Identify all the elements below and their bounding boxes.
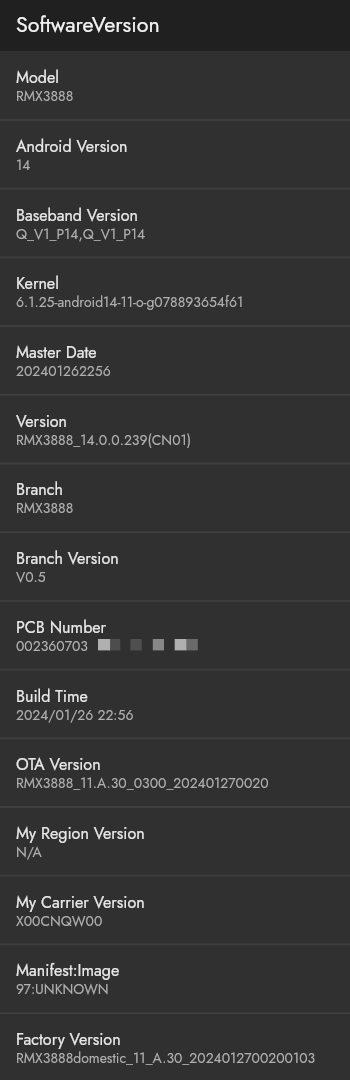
staticText: Model [16, 66, 59, 89]
staticText: RMX3888_11.A.30_0300_202401270020 [16, 773, 269, 793]
button[interactable]: Manifest:Image [0, 944, 350, 1013]
button[interactable]: Build Time [0, 670, 350, 739]
button[interactable]: SoftwareVersion [0, 0, 350, 51]
staticText: My Carrier Version [16, 891, 145, 914]
staticText: N/A [16, 842, 42, 862]
staticText: Android Version [16, 135, 128, 158]
staticText: Factory Version [16, 1028, 121, 1051]
button[interactable]: OTA Version [0, 738, 350, 807]
staticText: Baseband Version [16, 204, 138, 227]
button[interactable]: My Region Version [0, 807, 350, 876]
button[interactable]: My Carrier Version [0, 876, 350, 945]
button[interactable]: Kernel [0, 257, 350, 326]
button[interactable]: Master Date [0, 326, 350, 395]
staticText: Q_V1_P14,Q_V1_P14 [16, 224, 146, 244]
button[interactable]: PCB Number [0, 601, 350, 670]
staticText: Manifest:Image [16, 959, 120, 982]
staticText: 6.1.25-android14-11-o-g078893654f61 [16, 292, 244, 312]
button[interactable]: Branch Version [0, 532, 350, 601]
staticText: 97:UNKNOWN [16, 979, 109, 999]
staticText: My Region Version [16, 822, 145, 845]
staticText: Kernel [16, 272, 59, 295]
staticText: RMX3888 [16, 498, 74, 518]
staticText: RMX3888 [16, 86, 74, 106]
button[interactable]: Factory Version [0, 1013, 350, 1080]
button[interactable]: Baseband Version [0, 189, 350, 258]
staticText: SoftwareVersion [16, 9, 160, 40]
staticText: Master Date [16, 341, 97, 364]
staticText: Version [16, 410, 68, 433]
staticText: OTA Version [16, 753, 101, 776]
staticText: V0.5 [16, 567, 46, 587]
staticText: 14 [16, 155, 31, 175]
button[interactable]: Android Version [0, 120, 350, 189]
staticText: RMX3888domestic_11_A.30_2024012700200103 [16, 1048, 316, 1068]
button[interactable]: Branch [0, 463, 350, 532]
staticText: 2024/01/26 22:56 [16, 705, 134, 725]
button[interactable]: Model [0, 51, 350, 120]
staticText: X00CNQW00 [16, 911, 103, 931]
staticText: Build Time [16, 685, 88, 708]
staticText: Branch Version [16, 547, 119, 570]
staticText: RMX3888_14.0.0.239(CN01) [16, 430, 192, 450]
staticText: 002360703 [16, 636, 88, 656]
button[interactable]: Version [0, 395, 350, 464]
staticText: Branch [16, 478, 63, 501]
staticText: 202401262256 [16, 361, 111, 381]
staticText: PCB Number [16, 616, 107, 639]
